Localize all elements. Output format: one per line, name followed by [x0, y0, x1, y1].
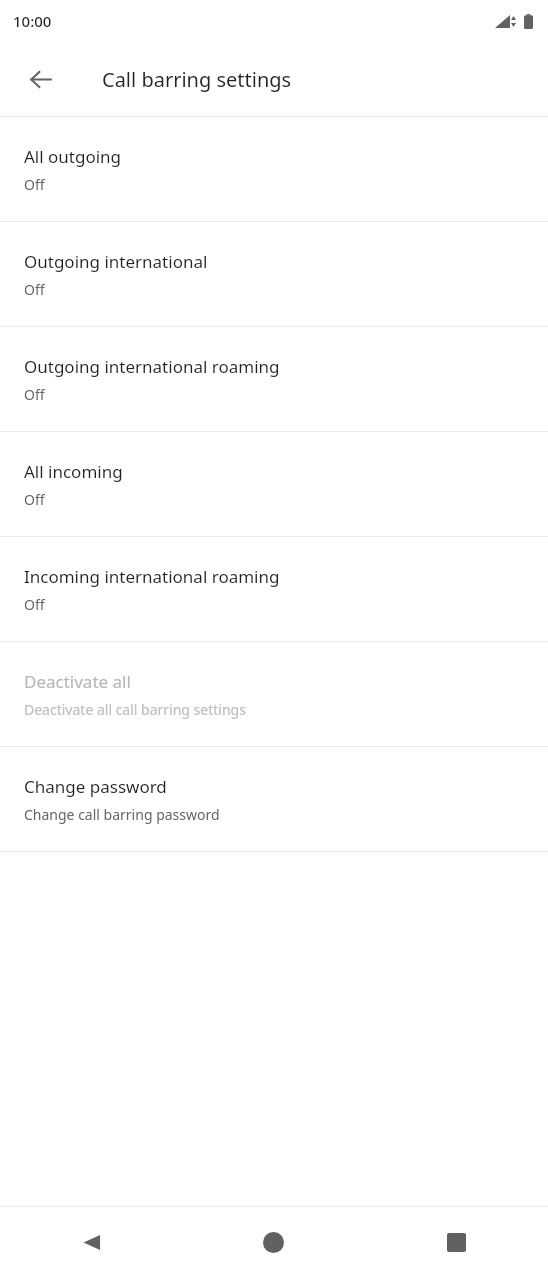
button[interactable]: Back — [0, 1207, 182, 1278]
button[interactable]: Incoming international roaming — [0, 537, 548, 641]
staticText: Change password — [24, 775, 167, 798]
staticText: Off — [24, 490, 45, 509]
staticText: Outgoing international roaming — [24, 355, 280, 378]
staticText: 10:00 — [13, 11, 52, 31]
staticText: Incoming international roaming — [24, 565, 280, 588]
staticText: Deactivate all call barring settings — [24, 700, 246, 719]
button[interactable]: Recent apps — [365, 1207, 548, 1278]
staticText: Call barring settings — [102, 66, 292, 93]
staticText: All incoming — [24, 460, 123, 483]
button[interactable]: Home — [182, 1207, 365, 1278]
button[interactable]: Outgoing international roaming — [0, 327, 548, 431]
staticText: Off — [24, 385, 45, 404]
button[interactable]: Deactivate all — [0, 642, 548, 746]
staticText: Off — [24, 595, 45, 614]
staticText: Deactivate all — [24, 670, 131, 693]
button[interactable]: Back — [16, 55, 64, 103]
staticText: Outgoing international — [24, 250, 208, 273]
button[interactable]: All incoming — [0, 432, 548, 536]
button[interactable]: All outgoing — [0, 117, 548, 221]
staticText: Off — [24, 280, 45, 299]
button[interactable]: Change password — [0, 747, 548, 851]
staticText: Change call barring password — [24, 805, 220, 824]
button[interactable]: Outgoing international — [0, 222, 548, 326]
staticText: All outgoing — [24, 145, 122, 168]
staticText: Off — [24, 175, 45, 194]
